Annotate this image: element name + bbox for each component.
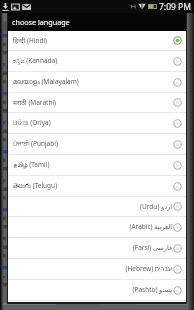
button[interactable]: ଓଡିଆ (Oriya) — [8, 113, 186, 133]
staticText: தமிழ் (Tamil) — [13, 160, 50, 169]
staticText: فارسی (Farsi) — [132, 243, 172, 252]
button[interactable]: മലയാളം (Malayalam) — [8, 72, 186, 92]
staticText: پښتو (Pashto) — [132, 285, 172, 294]
staticText: 7:09 PM — [159, 1, 191, 13]
button[interactable]: پښتو (Pashto) — [8, 280, 186, 300]
staticText: ಕನ್ನಡ (Kannada) — [13, 56, 58, 65]
button[interactable]: العربية (Arabic) — [8, 217, 186, 237]
staticText: हिन्दी (Hindi) — [13, 36, 48, 45]
button[interactable]: हिन्दी (Hindi) — [8, 31, 186, 50]
button[interactable]: ಕನ್ನಡ (Kannada) — [8, 51, 186, 71]
button[interactable]: ਪੰਜਾਬੀ (Punjabi) — [8, 134, 186, 154]
staticText: עברית (Hebrew) — [125, 264, 172, 273]
button[interactable]: فارسی (Farsi) — [8, 238, 186, 258]
staticText: اردو (Urdu) — [140, 202, 172, 211]
staticText: मराठी (Marathi) — [13, 98, 57, 107]
staticText: ଓଡିଆ (Oriya) — [13, 118, 51, 127]
button[interactable]: తెలుగు (Telugu) — [8, 176, 186, 196]
staticText: ਪੰਜਾਬੀ (Punjabi) — [13, 139, 58, 148]
staticText: മലയാളം (Malayalam) — [13, 77, 79, 86]
staticText: العربية (Arabic) — [129, 222, 172, 231]
button[interactable]: मराठी (Marathi) — [8, 93, 186, 112]
button[interactable]: தமிழ் (Tamil) — [8, 155, 186, 175]
button[interactable]: اردو (Urdu) — [8, 197, 186, 216]
button[interactable]: עברית (Hebrew) — [8, 259, 186, 279]
staticText: choose language — [12, 17, 70, 27]
staticText: తెలుగు (Telugu) — [13, 181, 58, 191]
